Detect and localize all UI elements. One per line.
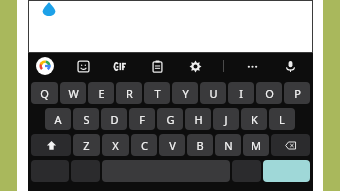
staticText: M: [251, 138, 261, 153]
staticText: G: [166, 112, 175, 127]
staticText: D: [110, 112, 119, 127]
button[interactable]: Z: [73, 134, 100, 156]
button[interactable]: I: [228, 82, 254, 104]
button[interactable]: K: [241, 108, 267, 130]
staticText: U: [209, 86, 218, 101]
staticText: Z: [83, 138, 90, 153]
button[interactable]: M: [243, 134, 269, 156]
staticText: A: [54, 112, 62, 127]
button[interactable]: F: [129, 108, 155, 130]
staticText: N: [224, 138, 233, 153]
button[interactable]: Stickers: [73, 56, 93, 76]
staticText: Y: [182, 86, 189, 101]
staticText: S: [83, 112, 90, 127]
staticText: L: [279, 112, 285, 127]
staticText: O: [265, 86, 274, 101]
staticText: E: [98, 86, 105, 101]
button[interactable]: Backspace: [271, 134, 310, 156]
button[interactable]: Water drop sticker: [42, 2, 56, 16]
staticText: W: [68, 86, 79, 101]
button[interactable]: J: [213, 108, 239, 130]
button[interactable]: Shift: [31, 134, 71, 156]
staticText: I: [239, 86, 243, 101]
staticText: F: [139, 112, 145, 127]
staticText: X: [112, 138, 119, 153]
button[interactable]: Clipboard: [147, 56, 167, 76]
button[interactable]: U: [200, 82, 226, 104]
button[interactable]: Google Search: [34, 55, 56, 77]
staticText: R: [126, 86, 133, 101]
button[interactable]: R: [116, 82, 142, 104]
staticText: B: [196, 138, 204, 153]
button[interactable]: Symbols: [31, 160, 69, 182]
button[interactable]: Y: [172, 82, 198, 104]
staticText: J: [224, 112, 228, 127]
button[interactable]: C: [131, 134, 157, 156]
staticText: H: [194, 112, 203, 127]
button[interactable]: G: [157, 108, 183, 130]
button[interactable]: H: [185, 108, 211, 130]
staticText: P: [294, 86, 301, 101]
button[interactable]: GIF: [110, 56, 130, 76]
button[interactable]: Enter: [263, 160, 310, 182]
staticText: Q: [40, 86, 49, 101]
button[interactable]: D: [101, 108, 127, 130]
button[interactable]: Settings: [185, 56, 205, 76]
button[interactable]: T: [144, 82, 170, 104]
staticText: K: [251, 112, 258, 127]
button[interactable]: P: [284, 82, 310, 104]
button[interactable]: Comma: [71, 160, 100, 182]
button[interactable]: B: [187, 134, 213, 156]
button[interactable]: N: [215, 134, 241, 156]
staticText: V: [169, 138, 176, 153]
button[interactable]: Period: [232, 160, 261, 182]
button[interactable]: More options: [242, 56, 262, 76]
button[interactable]: S: [73, 108, 99, 130]
button[interactable]: L: [269, 108, 295, 130]
button[interactable]: E: [88, 82, 114, 104]
button[interactable]: W: [60, 82, 86, 104]
button[interactable]: A: [45, 108, 71, 130]
button[interactable]: O: [256, 82, 282, 104]
button[interactable]: X: [102, 134, 129, 156]
staticText: T: [154, 86, 161, 101]
button[interactable]: Voice input: [280, 56, 300, 76]
button[interactable]: V: [159, 134, 185, 156]
staticText: C: [141, 138, 148, 153]
button[interactable]: Q: [31, 82, 58, 104]
